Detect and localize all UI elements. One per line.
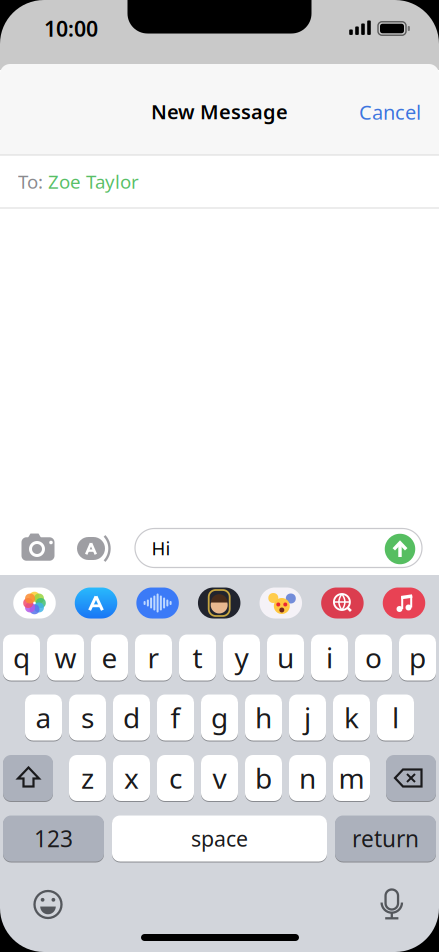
staticText: n (299, 759, 316, 797)
staticText: v (212, 759, 226, 797)
staticText: l (392, 699, 399, 736)
staticText: m (338, 759, 364, 797)
staticText: s (81, 699, 94, 736)
staticText: space (191, 824, 248, 853)
staticText: z (81, 759, 94, 797)
staticText: Zoe Taylor (48, 169, 139, 194)
staticText: New Message (151, 98, 288, 125)
staticText: r (147, 639, 159, 676)
staticText: a (35, 699, 51, 736)
staticText: p (409, 639, 426, 676)
staticText: c (169, 759, 182, 797)
staticText: 10:00 (44, 14, 98, 43)
staticText: w (54, 639, 76, 676)
staticText: e (101, 639, 117, 676)
staticText: d (123, 699, 140, 736)
staticText: y (234, 639, 248, 676)
staticText: u (277, 639, 294, 676)
staticText: k (344, 699, 359, 736)
staticText: x (124, 759, 139, 797)
staticText: g (211, 699, 228, 736)
staticText: 123 (34, 823, 73, 853)
staticText: o (365, 639, 382, 676)
staticText: q (13, 639, 30, 676)
staticText: j (304, 699, 311, 736)
staticText: b (255, 759, 272, 797)
staticText: i (326, 639, 333, 676)
staticText: Cancel (359, 99, 421, 125)
staticText: t (192, 639, 202, 676)
staticText: return (352, 823, 419, 853)
staticText: h (255, 699, 272, 736)
staticText: To: (18, 169, 43, 194)
staticText: Hi (151, 536, 170, 560)
staticText: f (170, 699, 180, 736)
